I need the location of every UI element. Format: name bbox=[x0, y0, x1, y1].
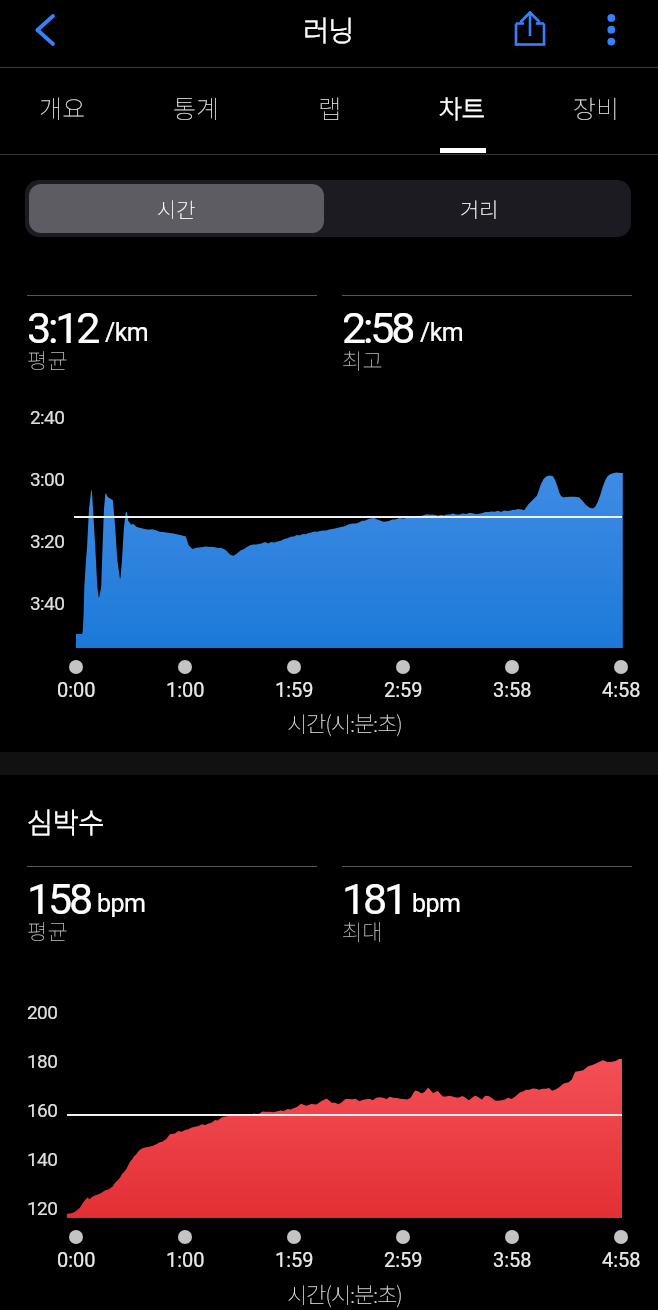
staticText: 4:58 bbox=[602, 1248, 641, 1271]
staticText: 140 bbox=[27, 1148, 58, 1170]
staticText: 차트 bbox=[439, 89, 486, 125]
button[interactable]: More options bbox=[584, 3, 638, 57]
staticText: 개요 bbox=[39, 89, 86, 125]
button[interactable]: 거리 bbox=[328, 180, 631, 237]
staticText: 3:58 bbox=[493, 1248, 532, 1271]
button[interactable]: Back bbox=[21, 6, 69, 54]
staticText: 최대 bbox=[342, 914, 383, 946]
staticText: 시간(시:분:초) bbox=[287, 706, 402, 738]
staticText: /km bbox=[105, 318, 149, 347]
staticText: 3:00 bbox=[30, 468, 65, 490]
button[interactable]: 차트 bbox=[397, 69, 527, 155]
staticText: 최고 bbox=[342, 343, 383, 375]
staticText: 3:20 bbox=[30, 530, 65, 552]
staticText: 3:58 bbox=[493, 678, 532, 701]
staticText: 1:00 bbox=[166, 1248, 205, 1271]
staticText: 4:58 bbox=[602, 678, 641, 701]
staticText: 160 bbox=[27, 1099, 58, 1121]
staticText: 180 bbox=[27, 1050, 58, 1072]
staticText: 거리 bbox=[460, 194, 499, 224]
staticText: 평균 bbox=[27, 914, 68, 946]
staticText: 통계 bbox=[173, 89, 220, 125]
staticText: 러닝 bbox=[303, 9, 355, 50]
button[interactable]: 개요 bbox=[0, 69, 127, 155]
staticText: bpm bbox=[97, 889, 146, 918]
staticText: 120 bbox=[27, 1197, 58, 1219]
staticText: bpm bbox=[412, 889, 461, 918]
button[interactable]: 장비 bbox=[531, 69, 658, 155]
staticText: 158 bbox=[27, 874, 90, 924]
staticText: 랩 bbox=[318, 89, 342, 125]
staticText: 심박수 bbox=[27, 801, 105, 842]
staticText: 3:40 bbox=[30, 592, 65, 614]
staticText: 2:59 bbox=[384, 678, 423, 701]
staticText: /km bbox=[420, 318, 464, 347]
staticText: 181 bbox=[342, 874, 405, 924]
staticText: 3:12 bbox=[27, 303, 98, 353]
staticText: 200 bbox=[27, 1001, 58, 1023]
staticText: 2:40 bbox=[30, 406, 65, 428]
staticText: 0:00 bbox=[57, 1248, 96, 1271]
staticText: 2:58 bbox=[342, 303, 413, 353]
button[interactable]: Share bbox=[503, 5, 557, 59]
staticText: 1:00 bbox=[166, 678, 205, 701]
button[interactable]: 통계 bbox=[131, 69, 261, 155]
staticText: 1:59 bbox=[275, 1248, 314, 1271]
staticText: 시간(시:분:초) bbox=[287, 1277, 402, 1309]
button[interactable]: 시간 bbox=[29, 184, 324, 233]
staticText: 0:00 bbox=[57, 678, 96, 701]
staticText: 2:59 bbox=[384, 1248, 423, 1271]
button[interactable]: 랩 bbox=[265, 69, 395, 155]
staticText: 1:59 bbox=[275, 678, 314, 701]
staticText: 평균 bbox=[27, 343, 68, 375]
staticText: 시간 bbox=[157, 194, 196, 224]
staticText: 장비 bbox=[573, 89, 620, 125]
